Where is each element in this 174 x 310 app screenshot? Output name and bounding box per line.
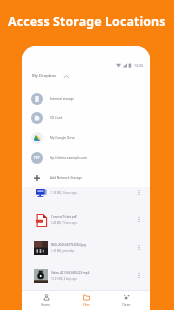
button[interactable]: Add Network Storage (22, 168, 150, 188)
staticText: My Google Drive (50, 136, 75, 140)
staticText: FTP (34, 156, 40, 160)
staticText: Add Network Storage (50, 176, 83, 180)
staticText: 1.25 MB, 2 hours ago (51, 191, 77, 195)
button[interactable]: More options (133, 187, 144, 198)
button[interactable]: Files (66, 291, 106, 310)
staticText: IMG-20453497540D4.jpg (51, 243, 86, 247)
button[interactable]: More options (133, 214, 144, 225)
staticText: 1.45 MB, yesterday (51, 249, 75, 253)
staticText: Access Storage Locations (8, 13, 166, 30)
staticText: 3.40 MB, 7 hours ago (51, 221, 77, 225)
button[interactable]: Video-4213563490223.mp4 (22, 262, 150, 289)
staticText: Video-4213563490223.mp4 (51, 271, 90, 275)
staticText: Home (41, 303, 51, 307)
staticText: Files (83, 303, 90, 307)
button[interactable]: Concert-Ticket.pdf (22, 206, 150, 233)
staticText: 12:34 (134, 63, 143, 68)
button[interactable]: My Google Drive (22, 128, 150, 148)
staticText: Internal storage (50, 97, 75, 101)
staticText: ftp://demo.example.com (50, 156, 88, 160)
staticText: SD Card (50, 116, 62, 120)
button[interactable]: FTP (22, 148, 150, 168)
staticText: Clean (122, 303, 131, 307)
button[interactable]: IMG-20453497540D4.jpg (22, 234, 150, 261)
staticText: 12.01 MB, 4 days ago (51, 277, 77, 281)
button[interactable]: Collapse (62, 72, 70, 80)
button[interactable]: More options (133, 242, 144, 253)
staticText: Concert-Ticket.pdf (51, 215, 77, 219)
button[interactable]: More options (133, 270, 144, 281)
button[interactable]: Clean (106, 291, 146, 310)
staticText: My Dropbox (32, 73, 57, 79)
button[interactable]: SD Card (22, 108, 150, 128)
button[interactable]: 1.25 MB, 2 hours ago (22, 179, 150, 206)
button[interactable]: Internal storage (22, 89, 150, 109)
button[interactable]: Home (26, 291, 66, 310)
